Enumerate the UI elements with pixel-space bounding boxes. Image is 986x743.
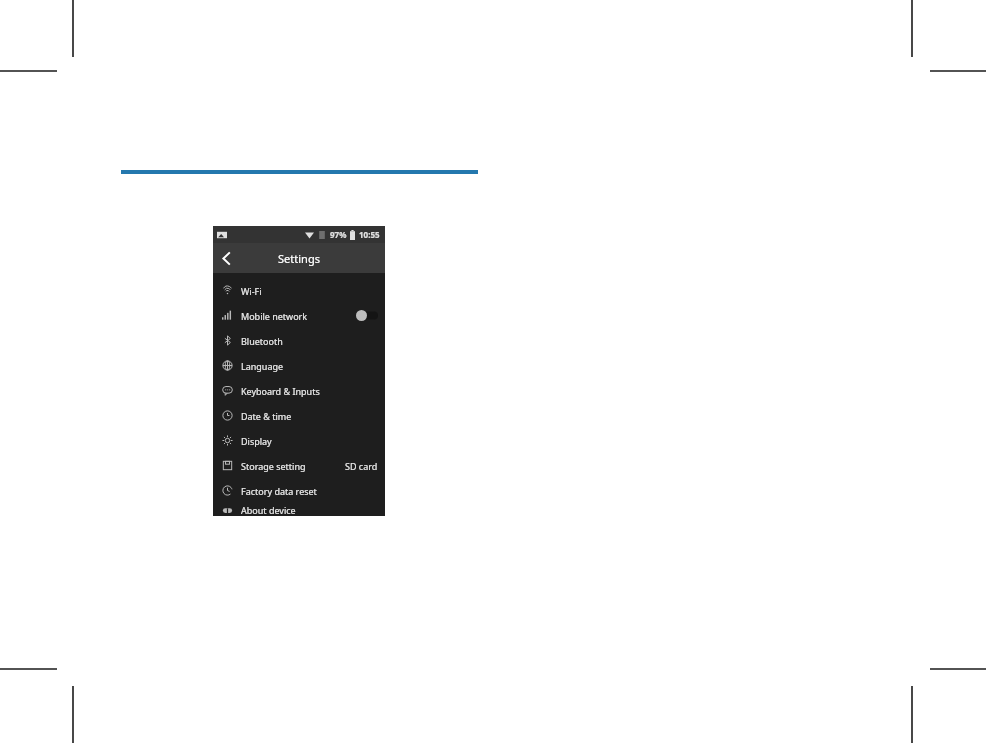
- staticText: Bluetooth: [241, 335, 283, 347]
- staticText: Language: [241, 360, 284, 372]
- staticText: Mobile network: [241, 310, 308, 322]
- button[interactable]: Date & time: [213, 403, 385, 428]
- staticText: Keyboard & Inputs: [241, 385, 320, 397]
- staticText: Date & time: [241, 410, 292, 422]
- staticText: About device: [241, 504, 296, 516]
- staticText: 10:55: [359, 229, 380, 240]
- staticText: Wi-Fi: [241, 285, 262, 297]
- button[interactable]: Display: [213, 428, 385, 453]
- staticText: Settings: [278, 251, 320, 266]
- staticText: Storage setting: [241, 460, 306, 472]
- staticText: 97%: [330, 229, 347, 240]
- button[interactable]: Factory data reset: [213, 478, 385, 503]
- button[interactable]: About device: [213, 503, 385, 516]
- button[interactable]: Back: [213, 245, 239, 271]
- staticText: Factory data reset: [241, 485, 317, 497]
- button[interactable]: Keyboard & Inputs: [213, 378, 385, 403]
- button[interactable]: Wi-Fi: [213, 278, 385, 303]
- staticText: Display: [241, 435, 272, 447]
- button[interactable]: Bluetooth: [213, 328, 385, 353]
- button[interactable]: Mobile network toggle: [356, 310, 378, 321]
- button[interactable]: Mobile network: [213, 303, 385, 328]
- staticText: SD card: [345, 460, 378, 472]
- button[interactable]: Language: [213, 353, 385, 378]
- button[interactable]: Storage setting: [213, 453, 385, 478]
